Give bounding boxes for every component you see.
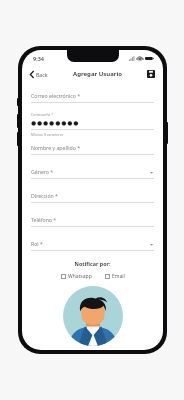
button[interactable]: Rol *: [31, 234, 154, 251]
staticText: Mínimo 8 caracteres: [31, 132, 64, 137]
staticText: Rol *: [31, 240, 43, 247]
button[interactable]: Teléfono *: [31, 210, 154, 227]
staticText: Dirección *: [31, 192, 58, 199]
staticText: Email: [112, 273, 125, 280]
staticText: Back: [36, 71, 48, 78]
staticText: Teléfono *: [31, 216, 57, 223]
button[interactable]: Contraseña *: [31, 106, 154, 137]
staticText: Correo electrónico *: [31, 92, 81, 99]
staticText: Contraseña *: [31, 112, 54, 117]
button[interactable]: Email: [103, 272, 127, 281]
button[interactable]: Correo electrónico *: [31, 86, 154, 103]
staticText: 9:34: [33, 55, 44, 62]
button[interactable]: Guardar: [146, 69, 156, 79]
button[interactable]: Back: [29, 69, 49, 80]
button[interactable]: Dirección *: [31, 186, 154, 203]
button[interactable]: Nombre y apellido *: [31, 138, 154, 155]
staticText: Notificar por:: [22, 260, 163, 267]
button[interactable]: Whatsapp: [59, 272, 94, 281]
staticText: ●●●●●●●●: [31, 119, 80, 126]
staticText: Agregar Usuario: [73, 70, 122, 78]
staticText: Género *: [31, 168, 54, 175]
staticText: Whatsapp: [68, 273, 92, 280]
button[interactable]: Foto de perfil: [63, 286, 123, 346]
staticText: Nombre y apellido *: [31, 144, 81, 151]
button[interactable]: Género *: [31, 162, 154, 179]
